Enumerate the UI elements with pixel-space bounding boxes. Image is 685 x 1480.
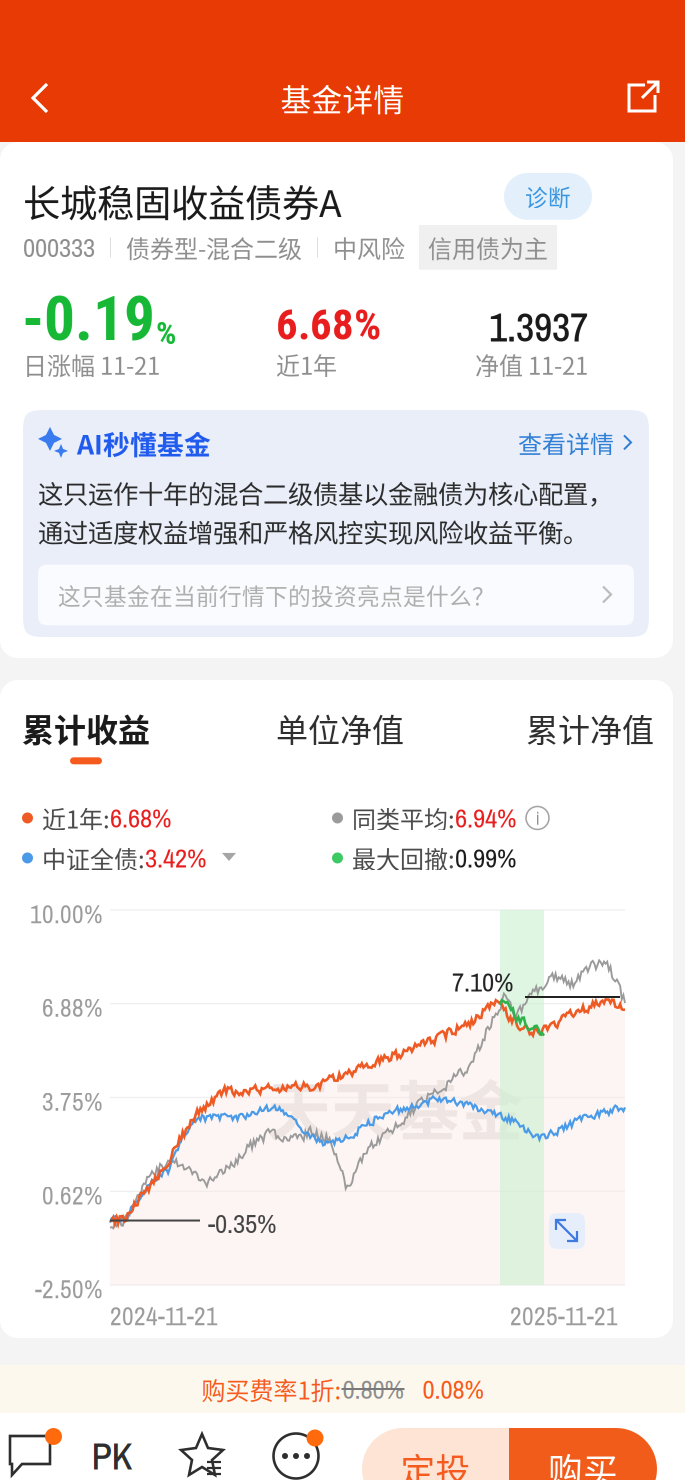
staticText: 中风险 bbox=[333, 230, 405, 265]
staticText: 通过适度权益增强和严格风控实现风险收益平衡。 bbox=[38, 513, 588, 550]
staticText: PK bbox=[91, 1431, 132, 1480]
staticText: 7.10% bbox=[452, 964, 513, 1000]
staticText: 1.3937 bbox=[489, 300, 588, 354]
staticText: % bbox=[156, 314, 176, 352]
staticText: 0.80% bbox=[342, 1371, 403, 1407]
staticText: 2025-11-21 bbox=[510, 1299, 618, 1333]
button[interactable]: 这只基金在当前行情下的投资亮点是什么？ bbox=[38, 565, 634, 625]
staticText: AI秒懂基金 bbox=[77, 424, 211, 462]
staticText: 单位净值 bbox=[276, 705, 404, 751]
button[interactable]: Share bbox=[611, 62, 677, 134]
button[interactable]: PK bbox=[82, 1430, 142, 1480]
staticText: 000333 bbox=[23, 229, 95, 265]
staticText: 6.68% bbox=[276, 300, 381, 350]
staticText: 近1年: bbox=[42, 801, 110, 835]
staticText: 信用债为主 bbox=[428, 230, 548, 265]
staticText: 长城稳固收益债券A bbox=[23, 174, 342, 228]
button[interactable]: Expand chart bbox=[549, 1213, 585, 1249]
button[interactable]: 单位净值 bbox=[276, 705, 404, 751]
staticText: 同类平均: bbox=[352, 801, 455, 835]
staticText: 债券型-混合二级 bbox=[126, 230, 302, 265]
button[interactable]: 累计净值 bbox=[526, 705, 654, 751]
staticText: -2.50% bbox=[35, 1272, 102, 1306]
staticText: 累计收益 bbox=[22, 705, 150, 751]
staticText: 6.94% bbox=[455, 800, 516, 836]
staticText: 0.62% bbox=[42, 1178, 102, 1212]
button[interactable]: Comments bbox=[2, 1430, 62, 1480]
staticText: 日涨幅 11-21 bbox=[23, 347, 160, 382]
staticText: 0.08% bbox=[404, 1371, 483, 1407]
staticText: 净值 11-21 bbox=[475, 347, 588, 382]
button[interactable]: 定投 bbox=[362, 1428, 509, 1480]
staticText: 6.88% bbox=[42, 991, 102, 1025]
button[interactable]: More bbox=[266, 1430, 326, 1480]
button[interactable]: 购买 bbox=[509, 1428, 657, 1480]
staticText: 3.75% bbox=[42, 1084, 102, 1119]
button[interactable]: 查看详情 bbox=[518, 425, 634, 460]
button[interactable]: Back bbox=[8, 62, 74, 134]
staticText: -0.19 bbox=[22, 283, 155, 355]
staticText: 累计净值 bbox=[526, 705, 654, 751]
staticText: i bbox=[535, 805, 539, 830]
staticText: 诊断 bbox=[525, 180, 571, 213]
staticText: 这只基金在当前行情下的投资亮点是什么？ bbox=[58, 579, 495, 611]
staticText: 近1年 bbox=[276, 347, 337, 382]
button[interactable]: Favourite bbox=[174, 1430, 234, 1480]
staticText: 10.00% bbox=[30, 897, 102, 931]
button[interactable]: 累计收益 bbox=[22, 705, 150, 764]
staticText: 2024-11-21 bbox=[110, 1299, 218, 1333]
staticText: 查看详情 bbox=[518, 425, 614, 460]
staticText: 定投 bbox=[400, 1444, 470, 1480]
staticText: 6.68% bbox=[110, 800, 171, 836]
staticText: 这只运作十年的混合二级债基以金融债为核心配置， bbox=[38, 474, 613, 511]
button[interactable]: 诊断 bbox=[504, 173, 592, 220]
staticText: 0.99% bbox=[455, 840, 516, 876]
staticText: 购买 bbox=[548, 1444, 618, 1480]
staticText: 天天基金 bbox=[267, 1060, 523, 1153]
staticText: 基金详情 bbox=[280, 76, 404, 120]
staticText: 中证全债: bbox=[42, 841, 145, 875]
staticText: 购买费率1折: bbox=[201, 1372, 341, 1406]
staticText: 最大回撤: bbox=[352, 841, 455, 875]
staticText: -0.35% bbox=[208, 1205, 276, 1241]
staticText: 3.42% bbox=[145, 840, 206, 876]
